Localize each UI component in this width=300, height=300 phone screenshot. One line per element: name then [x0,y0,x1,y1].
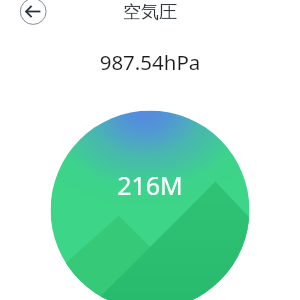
staticText: 987.54hPa [0,48,300,76]
staticText: 216M [0,168,300,202]
staticText: 空気圧 [123,1,177,24]
button[interactable]: Back [19,0,46,24]
